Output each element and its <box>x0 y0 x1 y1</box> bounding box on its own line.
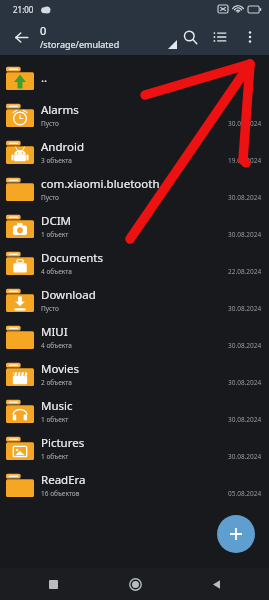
staticText: MIUI <box>41 324 68 340</box>
button[interactable]: View mode <box>205 22 235 52</box>
button[interactable]: Android <box>0 133 269 170</box>
button[interactable]: Back <box>6 22 36 52</box>
button[interactable]: Add <box>217 515 255 553</box>
staticText: 16 объектов <box>41 489 80 498</box>
staticText: 19.08.2024 <box>228 156 262 165</box>
staticText: 4 объекта <box>41 341 72 350</box>
button[interactable]: .. <box>0 59 269 96</box>
staticText: /storage/emulated <box>40 38 120 50</box>
button[interactable]: Search <box>175 22 205 52</box>
staticText: 1 объект <box>41 452 69 461</box>
staticText: 30.08.2024 <box>228 119 262 128</box>
button[interactable]: Recents <box>40 571 66 597</box>
staticText: 1 объект <box>41 415 69 424</box>
staticText: 30.08.2024 <box>228 193 262 202</box>
button[interactable]: Download <box>0 281 269 318</box>
button[interactable]: Movies <box>0 355 269 392</box>
staticText: 21:00 <box>13 4 34 15</box>
staticText: Alarms <box>41 102 79 118</box>
button[interactable]: Home <box>122 571 148 597</box>
button[interactable]: More options <box>235 22 265 52</box>
staticText: 30.08.2024 <box>228 230 262 239</box>
staticText: Пусто <box>41 304 59 313</box>
staticText: 1 объект <box>41 230 69 239</box>
staticText: DCIM <box>41 213 71 229</box>
staticText: Android <box>41 139 85 155</box>
button[interactable]: ReadEra <box>0 466 269 503</box>
staticText: Пусто <box>41 119 59 128</box>
button[interactable]: Documents <box>0 244 269 281</box>
button[interactable]: Music <box>0 392 269 429</box>
staticText: .. <box>41 70 48 86</box>
button[interactable]: MIUI <box>0 318 269 355</box>
button[interactable]: Pictures <box>0 429 269 466</box>
staticText: 30.08.2024 <box>228 415 262 424</box>
staticText: 30.08.2024 <box>228 378 262 387</box>
button[interactable]: Alarms <box>0 96 269 133</box>
staticText: 22.08.2024 <box>228 267 262 276</box>
staticText: Movies <box>41 361 79 377</box>
button[interactable]: DCIM <box>0 207 269 244</box>
staticText: Download <box>41 287 96 303</box>
button[interactable]: Back <box>203 571 229 597</box>
staticText: 3 объекта <box>41 156 72 165</box>
staticText: 0 <box>40 23 47 38</box>
staticText: com.xiaomi.bluetooth <box>41 176 160 192</box>
staticText: 4 объекта <box>41 267 72 276</box>
staticText: 30.08.2024 <box>228 452 262 461</box>
staticText: Пусто <box>41 193 59 202</box>
staticText: 30.08.2024 <box>228 304 262 313</box>
staticText: Music <box>41 398 73 414</box>
staticText: 2 объекта <box>41 378 72 387</box>
staticText: 30.08.2024 <box>228 341 262 350</box>
staticText: Pictures <box>41 435 85 451</box>
staticText: Documents <box>41 250 103 266</box>
staticText: 05.08.2024 <box>228 489 262 498</box>
button[interactable]: com.xiaomi.bluetooth <box>0 170 269 207</box>
staticText: ReadEra <box>41 472 86 488</box>
